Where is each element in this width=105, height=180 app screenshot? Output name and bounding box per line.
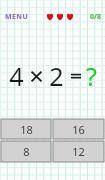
staticText: 2 <box>49 59 64 93</box>
button[interactable]: MENU <box>3 10 31 24</box>
staticText: 4 <box>9 59 24 93</box>
button[interactable]: 18 <box>1 119 51 139</box>
staticText: ? <box>86 59 97 93</box>
staticText: 12 <box>72 144 85 159</box>
staticText: 16 <box>72 122 85 137</box>
button[interactable]: 8 <box>1 141 51 162</box>
staticText: MENU <box>5 12 29 22</box>
staticText: 18 <box>20 122 33 137</box>
other: Life <box>66 13 74 21</box>
button[interactable]: 16 <box>53 119 104 139</box>
other: Life <box>56 13 64 21</box>
staticText: 0/8 <box>90 12 101 22</box>
other: Life <box>46 13 54 21</box>
staticText: 8 <box>23 144 30 159</box>
button[interactable]: 12 <box>53 141 104 162</box>
